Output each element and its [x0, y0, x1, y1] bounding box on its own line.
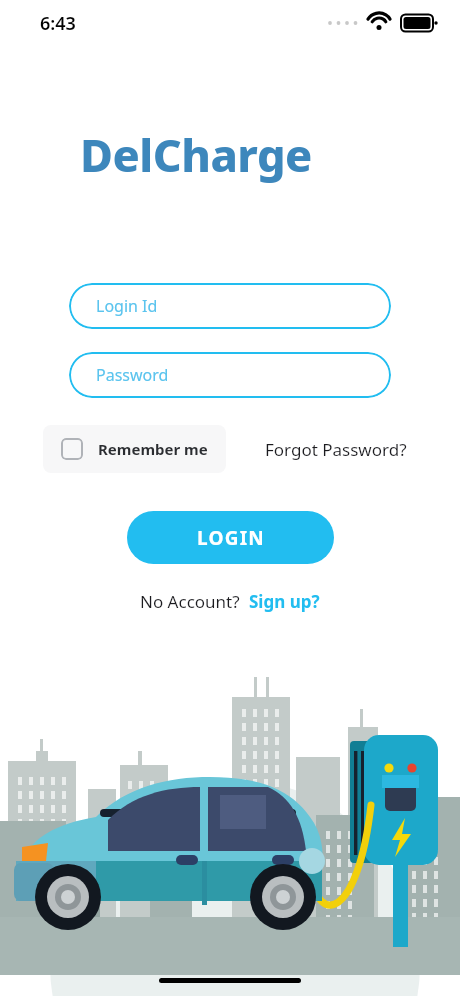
button[interactable]: Remember me [43, 425, 226, 473]
button[interactable]: Forgot Password? [261, 434, 411, 465]
button[interactable]: LOGIN [127, 511, 334, 564]
button[interactable]: Login Id [69, 283, 391, 329]
staticText: LOGIN [197, 525, 265, 551]
staticText: Forgot Password? [265, 438, 407, 461]
staticText: Login Id [96, 295, 158, 317]
staticText: 6:43 [40, 11, 76, 36]
button[interactable]: Sign up? [249, 590, 320, 613]
staticText: No Account? [140, 590, 240, 613]
staticText: Remember me [98, 439, 208, 459]
staticText: Password [96, 364, 169, 386]
button[interactable]: Password [69, 352, 391, 398]
staticText: Sign up? [249, 590, 320, 613]
staticText: DelCharge [80, 124, 460, 185]
